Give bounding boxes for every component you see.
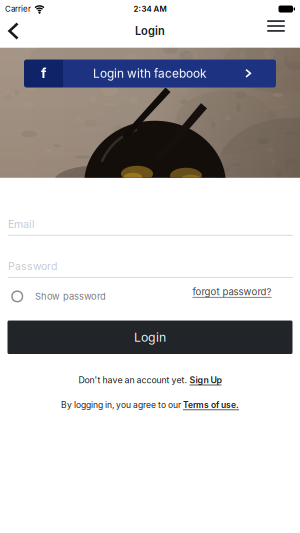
- staticText: Password: [8, 260, 57, 273]
- staticText: Show password: [35, 291, 106, 302]
- button[interactable]: forgot password?: [192, 286, 271, 298]
- button[interactable]: Show password: [0, 291, 106, 302]
- button[interactable]: Email: [0, 216, 300, 238]
- staticText: Login: [135, 24, 165, 38]
- button[interactable]: Back: [0, 19, 25, 42]
- staticText: Login: [134, 330, 166, 345]
- staticText: Login with facebook: [93, 66, 207, 81]
- staticText: By logging in, you agree to our Terms of…: [61, 400, 239, 410]
- staticText: Email: [8, 218, 35, 230]
- staticText: forgot password?: [192, 286, 271, 298]
- button[interactable]: f: [24, 59, 276, 87]
- staticText: f: [41, 65, 46, 82]
- staticText: Don't have an account yet. Sign Up: [78, 375, 221, 385]
- button[interactable]: Menu: [267, 20, 300, 42]
- button[interactable]: Password: [0, 258, 300, 280]
- staticText: 2:34 AM: [133, 4, 166, 14]
- button[interactable]: By logging in, you agree to our Terms of…: [61, 400, 239, 410]
- button[interactable]: Login: [7, 320, 292, 354]
- button[interactable]: Don't have an account yet. Sign Up: [78, 375, 221, 385]
- staticText: Carrier: [5, 4, 31, 14]
